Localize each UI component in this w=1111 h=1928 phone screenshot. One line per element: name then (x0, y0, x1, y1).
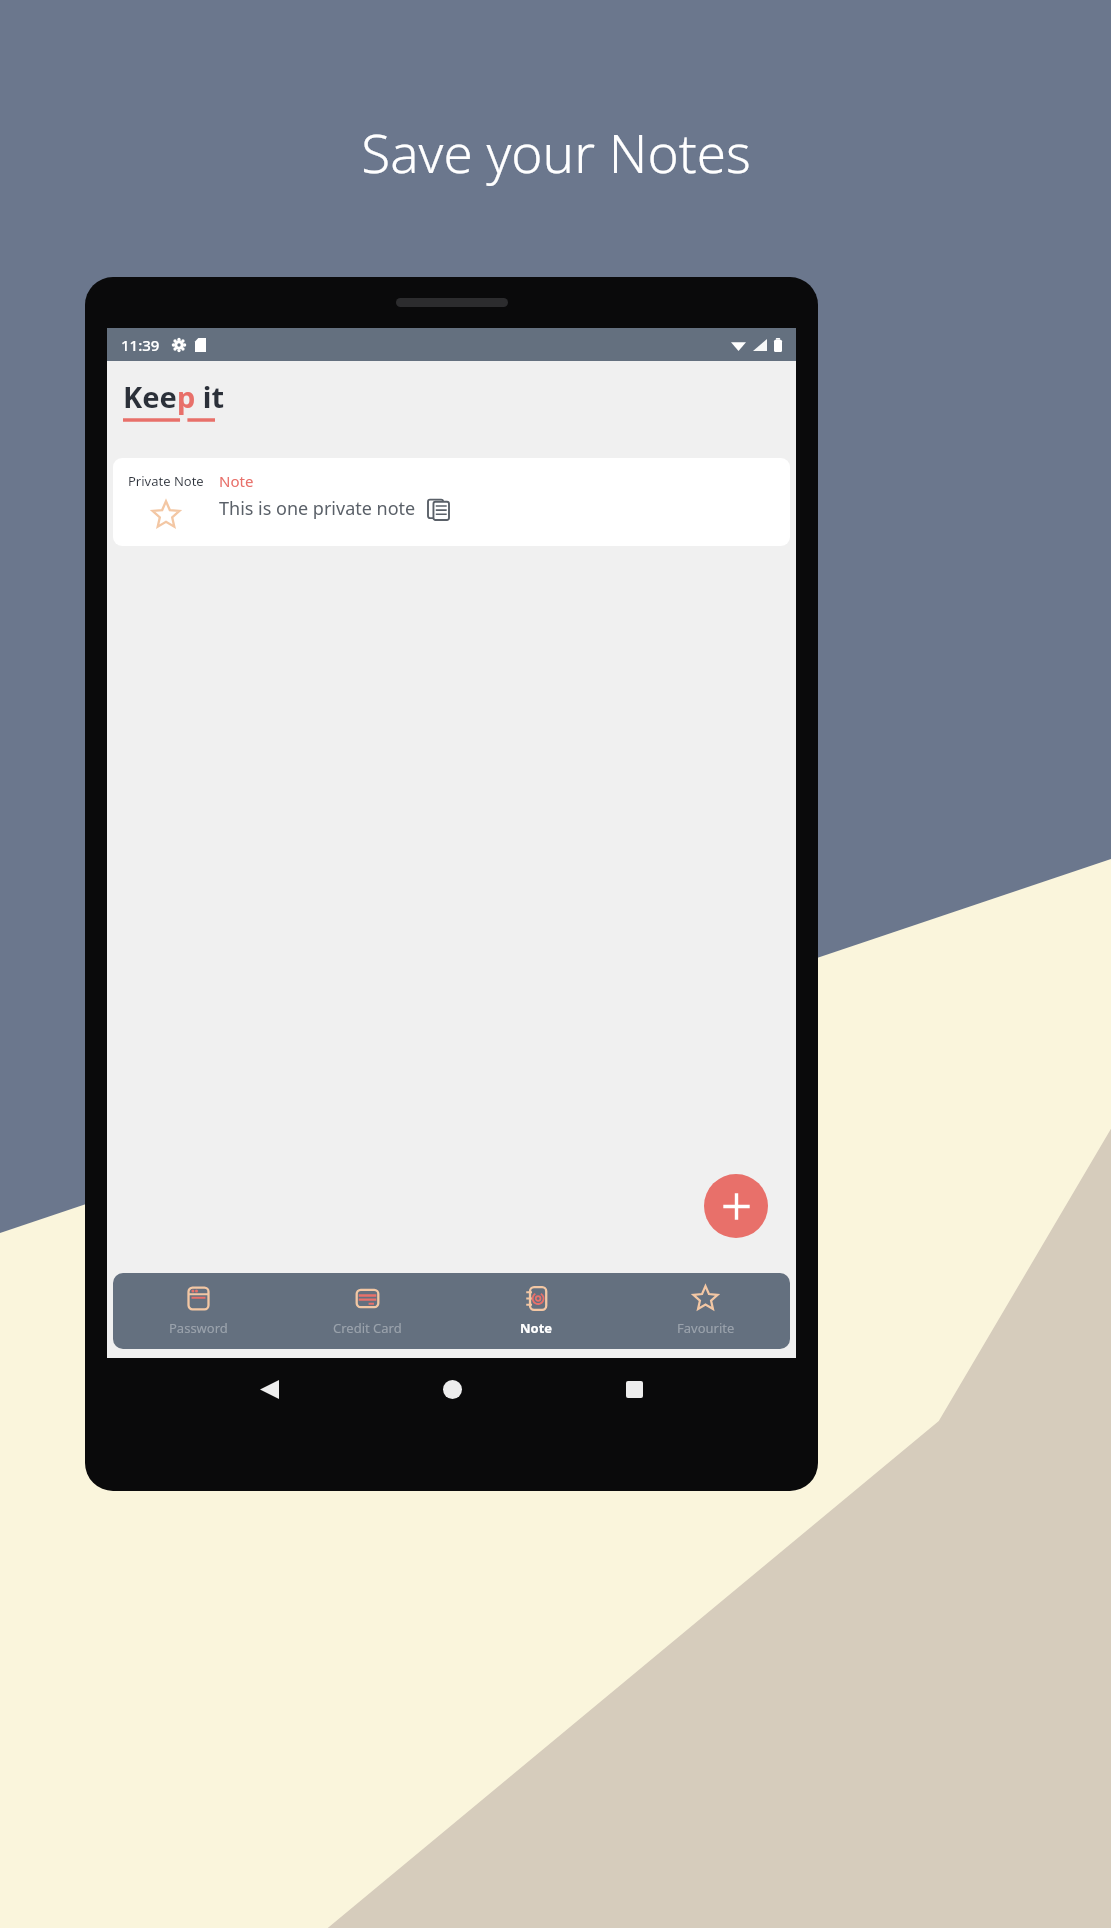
button[interactable]: Add item (704, 1174, 768, 1238)
button[interactable]: Password (113, 1273, 283, 1349)
staticText: Save your Notes (361, 116, 751, 188)
staticText: Private Note (128, 472, 204, 490)
button[interactable]: Recents (614, 1369, 654, 1409)
button[interactable]: Favourite (621, 1273, 790, 1349)
staticText: Credit Card (333, 1319, 402, 1337)
button[interactable]: Home (432, 1369, 472, 1409)
staticText: 11:39 (121, 335, 160, 355)
button[interactable]: Private Note (113, 458, 790, 546)
staticText: Keep it (123, 377, 225, 416)
button[interactable]: Keep it (123, 377, 225, 422)
staticText: Favourite (677, 1319, 735, 1337)
button[interactable]: Back (249, 1369, 289, 1409)
staticText: Note (219, 471, 254, 491)
button[interactable]: Copy note (426, 497, 450, 521)
button[interactable]: Note (452, 1273, 621, 1349)
staticText: Note (520, 1319, 553, 1337)
staticText: This is one private note (219, 496, 416, 521)
staticText: Password (169, 1319, 228, 1337)
button[interactable]: Credit Card (283, 1273, 452, 1349)
